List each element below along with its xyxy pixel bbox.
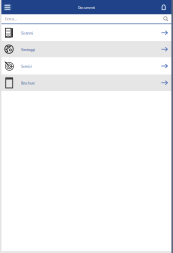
button[interactable]: Servizi (0, 57, 173, 74)
button[interactable]: Sistemi (0, 24, 173, 41)
button[interactable]: Brochure (0, 74, 173, 91)
button[interactable]: Vantaggi (0, 41, 173, 57)
button[interactable]: Documents (162, 4, 166, 10)
staticText: Brochure (21, 80, 35, 86)
staticText: Cerca... (5, 16, 17, 21)
staticText: Servizi (21, 63, 32, 69)
staticText: Vantaggi (21, 46, 35, 52)
staticText: Sistemi (21, 30, 33, 36)
button[interactable]: Cerca... (0, 14, 173, 23)
button[interactable]: Menu (3, 4, 11, 11)
staticText: Documenti (78, 4, 95, 10)
